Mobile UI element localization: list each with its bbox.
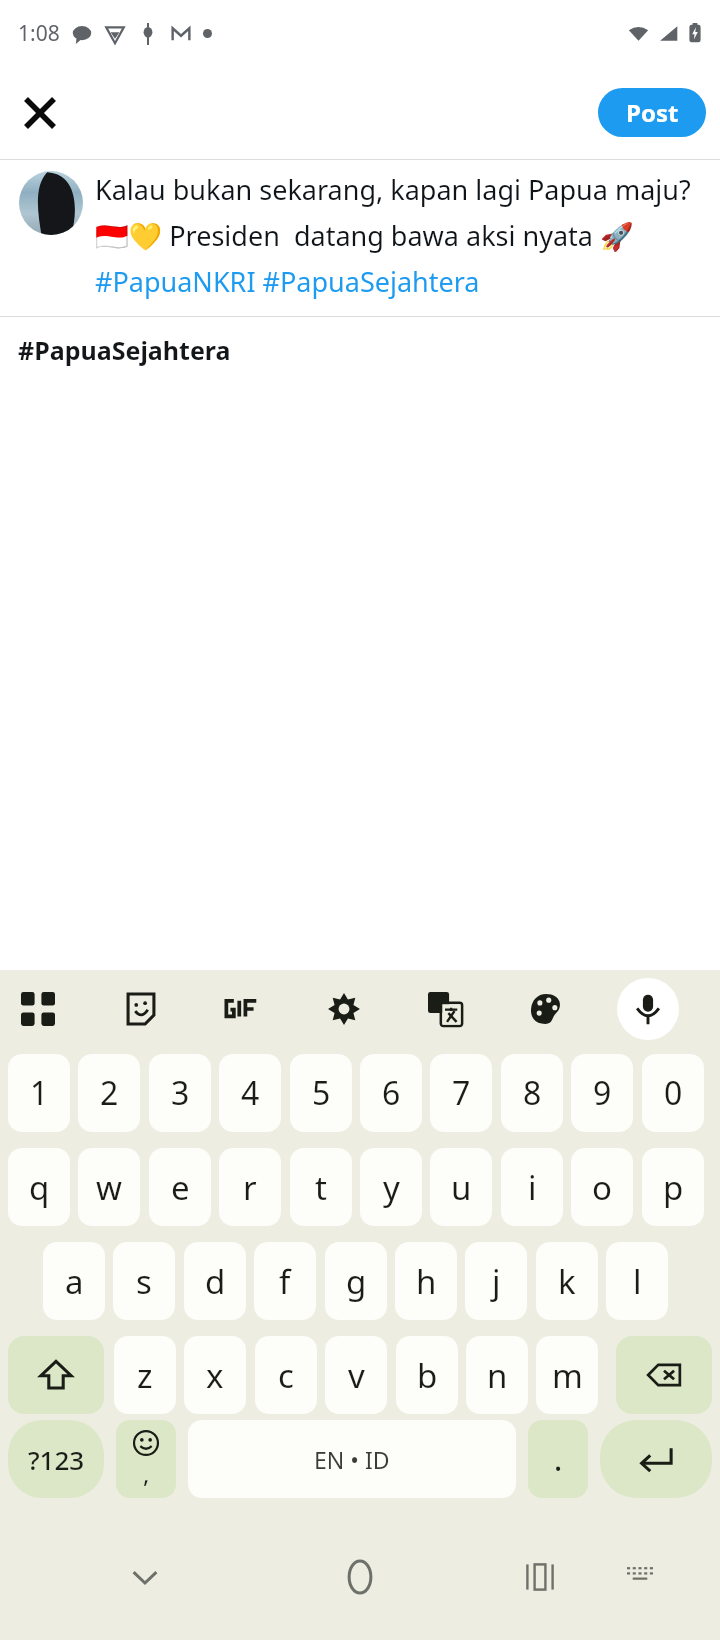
staticText: Post <box>626 96 679 129</box>
staticText: o <box>592 1165 612 1210</box>
button[interactable]: m <box>536 1336 598 1414</box>
button[interactable]: v <box>325 1336 387 1414</box>
staticText: v <box>348 1353 365 1398</box>
button[interactable]: Home <box>330 1547 390 1607</box>
staticText: a <box>65 1259 84 1304</box>
staticText: #PapuaSejahtera <box>18 333 231 367</box>
staticText: 3 <box>171 1071 190 1115</box>
staticText: . <box>554 1439 563 1480</box>
staticText: j <box>492 1259 501 1304</box>
button[interactable]: Shift <box>8 1336 104 1414</box>
button[interactable]: a <box>43 1242 105 1320</box>
button[interactable]: 8 <box>501 1054 563 1132</box>
button[interactable]: c <box>255 1336 317 1414</box>
button[interactable]: Recents <box>510 1547 570 1607</box>
staticText: , <box>143 1457 150 1490</box>
button[interactable]: 3 <box>149 1054 211 1132</box>
button[interactable]: ?123 <box>8 1420 104 1498</box>
button[interactable]: e <box>149 1148 211 1226</box>
button[interactable]: j <box>465 1242 527 1320</box>
button[interactable]: k <box>536 1242 598 1320</box>
staticText: w <box>96 1165 122 1210</box>
staticText: EN • ID <box>314 1444 390 1475</box>
staticText: h <box>416 1259 437 1304</box>
staticText: c <box>278 1353 294 1398</box>
staticText: t <box>315 1165 327 1210</box>
button[interactable]: Hide keyboard <box>612 1549 668 1605</box>
button[interactable]: Keyboard tool <box>110 978 172 1040</box>
staticText: 0 <box>664 1071 683 1115</box>
button[interactable]: y <box>360 1148 422 1226</box>
button[interactable]: q <box>8 1148 70 1226</box>
button[interactable]: 9 <box>571 1054 633 1132</box>
staticText: l <box>633 1259 642 1304</box>
staticText: p <box>663 1165 684 1210</box>
button[interactable]: Keyboard tool <box>7 978 69 1040</box>
staticText: ?123 <box>28 1442 85 1477</box>
staticText: Kalau bukan sekarang, kapan lagi Papua m… <box>95 171 702 300</box>
button[interactable]: u <box>430 1148 492 1226</box>
staticText: y <box>383 1165 400 1210</box>
button[interactable]: Enter <box>600 1420 712 1498</box>
button[interactable]: o <box>571 1148 633 1226</box>
staticText: z <box>137 1353 153 1398</box>
staticText: 8 <box>523 1071 542 1115</box>
button[interactable]: #PapuaSejahtera <box>0 317 720 382</box>
button[interactable]: h <box>395 1242 457 1320</box>
staticText: e <box>171 1165 190 1210</box>
button[interactable]: s <box>113 1242 175 1320</box>
button[interactable]: g <box>325 1242 387 1320</box>
button[interactable]: r <box>219 1148 281 1226</box>
button[interactable]: . <box>528 1420 588 1498</box>
staticText: 6 <box>382 1071 401 1115</box>
button[interactable]: Keyboard tool <box>211 978 273 1040</box>
button[interactable]: 7 <box>430 1054 492 1132</box>
staticText: f <box>279 1259 291 1304</box>
button[interactable]: l <box>606 1242 668 1320</box>
button[interactable]: f <box>254 1242 316 1320</box>
staticText: k <box>558 1259 576 1304</box>
button[interactable]: i <box>501 1148 563 1226</box>
button[interactable]: 2 <box>78 1054 140 1132</box>
button[interactable]: Post <box>598 88 706 137</box>
staticText: 7 <box>452 1071 471 1115</box>
staticText: b <box>417 1353 438 1398</box>
button[interactable]: 1 <box>8 1054 70 1132</box>
staticText: g <box>346 1259 367 1304</box>
button[interactable]: Keyboard tool <box>414 978 476 1040</box>
button[interactable]: x <box>184 1336 246 1414</box>
button[interactable]: p <box>642 1148 704 1226</box>
button[interactable]: w <box>78 1148 140 1226</box>
staticText: 1:08 <box>18 19 60 48</box>
staticText: 5 <box>312 1071 331 1115</box>
staticText: m <box>552 1353 583 1398</box>
staticText: 4 <box>241 1071 260 1115</box>
button[interactable]: Keyboard tool <box>313 978 375 1040</box>
staticText: 2 <box>100 1071 119 1115</box>
button[interactable]: 4 <box>219 1054 281 1132</box>
staticText: 1 <box>30 1071 49 1115</box>
button[interactable]: EN • ID <box>188 1420 516 1498</box>
staticText: i <box>528 1165 537 1210</box>
button[interactable]: d <box>184 1242 246 1320</box>
button[interactable]: Keyboard tool <box>515 978 577 1040</box>
button[interactable]: n <box>466 1336 528 1414</box>
button[interactable]: Backspace <box>616 1336 712 1414</box>
button[interactable]: 0 <box>642 1054 704 1132</box>
button[interactable]: Close <box>12 85 68 141</box>
button[interactable]: b <box>396 1336 458 1414</box>
button[interactable]: Back <box>115 1547 175 1607</box>
button[interactable]: 5 <box>290 1054 352 1132</box>
button[interactable]: Voice input <box>617 978 679 1040</box>
button[interactable]: t <box>290 1148 352 1226</box>
staticText: d <box>205 1259 226 1304</box>
staticText: q <box>29 1165 50 1210</box>
button[interactable]: z <box>114 1336 176 1414</box>
button[interactable]: 6 <box>360 1054 422 1132</box>
button[interactable]: Emoji <box>116 1420 176 1498</box>
staticText: 9 <box>593 1071 612 1115</box>
staticText: n <box>487 1353 508 1398</box>
staticText: x <box>206 1353 224 1398</box>
staticText: s <box>136 1259 152 1304</box>
staticText: u <box>451 1165 472 1210</box>
